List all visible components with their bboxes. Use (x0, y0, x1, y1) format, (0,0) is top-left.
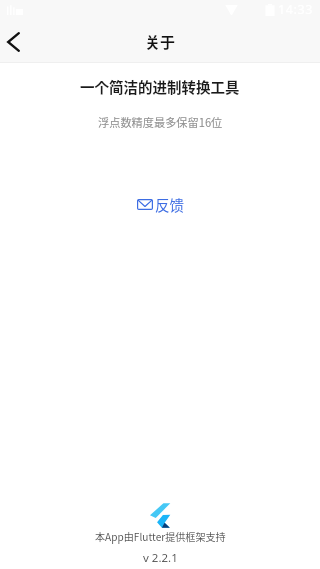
button[interactable]: 反馈 (131, 190, 190, 219)
staticText: 关于 (145, 31, 176, 53)
staticText: v 2.2.1 (143, 550, 178, 566)
staticText: 本App由Flutter提供框架支持 (95, 529, 226, 544)
staticText: 反馈 (155, 194, 184, 215)
button[interactable]: Back (0, 18, 44, 62)
staticText: 一个简洁的进制转换工具 (80, 76, 240, 97)
staticText: 浮点数精度最多保留16位 (98, 114, 223, 130)
